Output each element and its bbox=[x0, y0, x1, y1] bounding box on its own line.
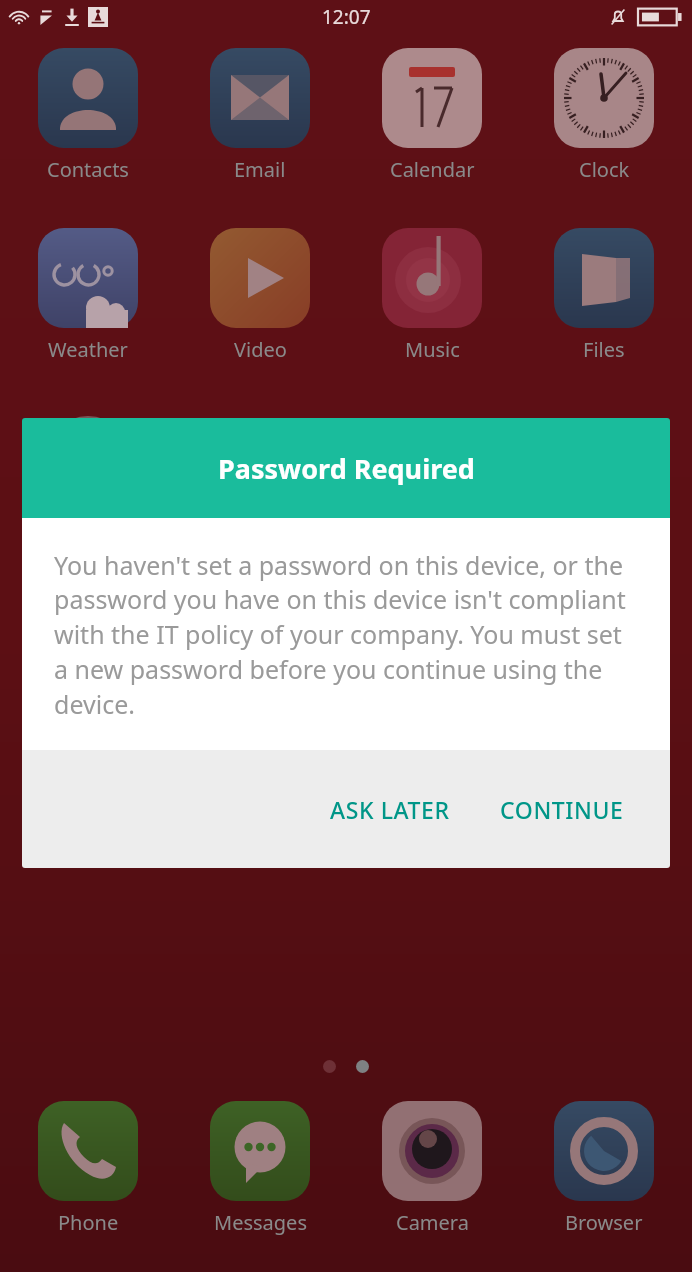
staticText: Files bbox=[583, 336, 625, 363]
staticText: Calendar bbox=[390, 156, 475, 183]
button[interactable]: Phone bbox=[4, 1101, 172, 1236]
button[interactable] bbox=[348, 408, 516, 508]
button[interactable] bbox=[176, 588, 344, 688]
button[interactable]: Calendar bbox=[348, 48, 516, 183]
staticText: Password Required bbox=[218, 450, 475, 487]
staticText: Music bbox=[405, 336, 460, 363]
button[interactable]: Browser bbox=[520, 408, 688, 543]
staticText: CONTINUE bbox=[500, 794, 624, 825]
button[interactable]: Camera bbox=[348, 1101, 516, 1236]
staticText: Weather bbox=[48, 336, 128, 363]
staticText: Browser bbox=[565, 1209, 643, 1236]
button[interactable]: Video bbox=[176, 228, 344, 363]
button[interactable]: CONTINUE bbox=[486, 782, 638, 837]
button[interactable]: Facebook bbox=[4, 588, 172, 723]
button[interactable]: Email bbox=[176, 48, 344, 183]
button[interactable]: Ok bbox=[4, 408, 172, 543]
button[interactable]: Browser bbox=[520, 1101, 688, 1236]
staticText: Ok bbox=[75, 516, 102, 543]
button[interactable] bbox=[520, 588, 688, 688]
button[interactable] bbox=[348, 588, 516, 688]
button[interactable]: Weather bbox=[4, 228, 172, 363]
button[interactable] bbox=[176, 408, 344, 508]
staticText: Contacts bbox=[47, 156, 129, 183]
button[interactable]: Files bbox=[520, 228, 688, 363]
staticText: Email bbox=[234, 156, 286, 183]
button[interactable]: Music bbox=[348, 228, 516, 363]
staticText: Camera bbox=[396, 1209, 469, 1236]
staticText: Facebook bbox=[52, 696, 142, 723]
staticText: Browser bbox=[565, 516, 643, 543]
button[interactable]: ASK LATER bbox=[316, 782, 464, 837]
staticText: Video bbox=[234, 336, 287, 363]
button[interactable]: Contacts bbox=[4, 48, 172, 183]
staticText: You haven't set a password on this devic… bbox=[54, 548, 640, 722]
staticText: ASK LATER bbox=[330, 794, 450, 825]
button[interactable]: Clock bbox=[520, 48, 688, 183]
staticText: Clock bbox=[579, 156, 630, 183]
button[interactable]: Messages bbox=[176, 1101, 344, 1236]
staticText: Messages bbox=[214, 1209, 307, 1236]
staticText: 12:07 bbox=[322, 4, 371, 30]
staticText: Phone bbox=[58, 1209, 119, 1236]
